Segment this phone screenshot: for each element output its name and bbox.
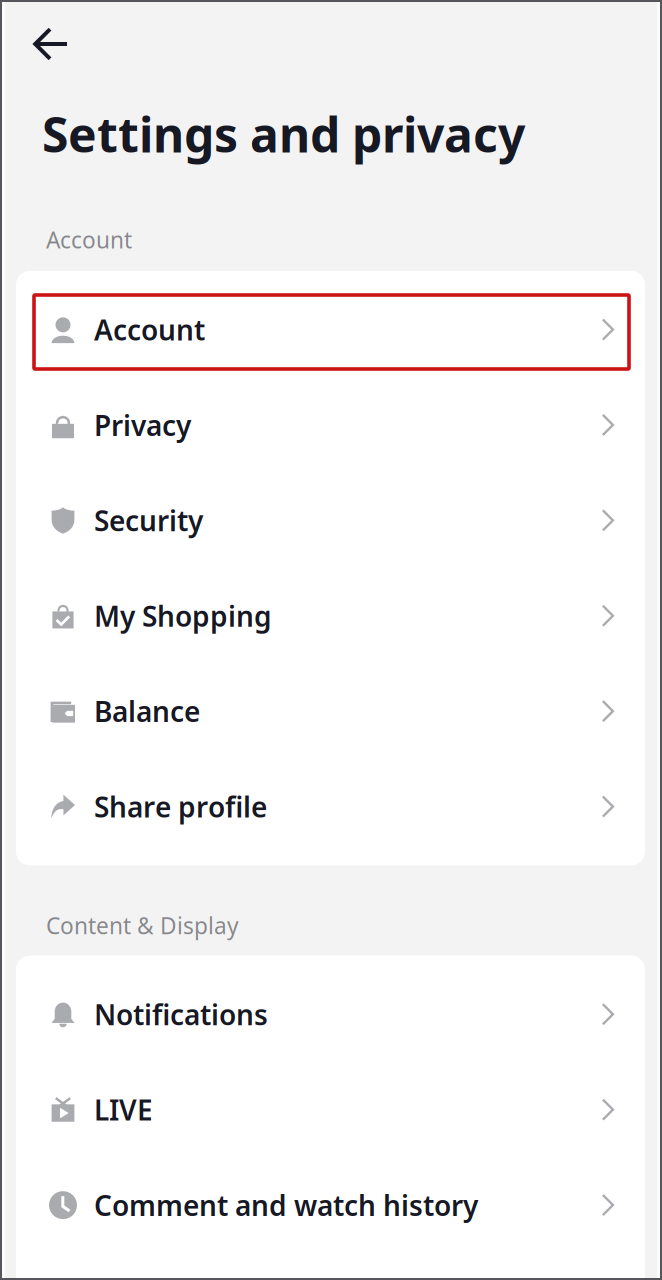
button[interactable]: Notifications	[16, 967, 645, 1062]
staticText: Share profile	[94, 788, 267, 825]
staticText: Content & Display	[46, 910, 239, 940]
staticText: Security	[94, 502, 203, 539]
staticText: Settings and privacy	[42, 102, 525, 166]
button[interactable]: LIVE	[16, 1062, 645, 1157]
staticText: Comment and watch history	[94, 1187, 478, 1224]
button[interactable]: Comment and watch history	[16, 1157, 645, 1253]
staticText: Notifications	[94, 996, 268, 1033]
button[interactable]: Share profile	[16, 759, 645, 854]
staticText: Privacy	[94, 406, 191, 444]
staticText: My Shopping	[94, 597, 272, 634]
staticText: Account	[94, 311, 205, 348]
button[interactable]: Balance	[16, 663, 645, 759]
button[interactable]: Security	[16, 473, 645, 568]
button[interactable]: Privacy	[16, 377, 645, 473]
staticText: Balance	[94, 693, 200, 730]
staticText: LIVE	[94, 1091, 153, 1128]
button[interactable]: Back	[0, 0, 91, 79]
staticText: Account	[46, 225, 132, 255]
button[interactable]: Account	[16, 282, 645, 377]
button[interactable]: My Shopping	[16, 568, 645, 663]
